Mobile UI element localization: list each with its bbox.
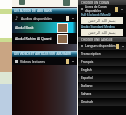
staticText: Deutsch (81, 100, 94, 104)
staticText: Français (81, 60, 94, 64)
button[interactable]: LES VIDEOS ET ARTICLES SUR ABU BAKR (12, 51, 77, 57)
staticText: Videos lectures (20, 59, 45, 64)
button[interactable]: LES AUDIOS DE ABU BAKR (12, 8, 77, 14)
staticText: Sahara (81, 92, 92, 96)
button[interactable]: Abdul Basit (12, 22, 77, 33)
button[interactable]: Sahara (78, 90, 126, 98)
button[interactable]: Español (78, 74, 126, 82)
button[interactable]: Livres de Coran (78, 5, 126, 13)
staticText: English (81, 68, 92, 72)
button[interactable]: Abdul Rahim Al Qasmi (12, 33, 77, 44)
staticText: ♪ (15, 15, 19, 21)
staticText: disponibles (85, 9, 102, 13)
staticText: CHOISIR UNE LANGUE (81, 38, 113, 42)
button[interactable]: Transcription (78, 50, 126, 58)
staticText: CHOISIR UN CORAN (81, 1, 110, 5)
staticText: LES AUDIOS DE ABU BAKR (14, 9, 52, 13)
button[interactable]: بسم الله الرحمن (81, 17, 123, 24)
button[interactable]: بسم الله الرحمن (81, 29, 123, 36)
staticText: Audios disponibles (21, 16, 52, 21)
button[interactable]: Langues disponibles (78, 42, 126, 50)
staticText: LES VIDEOS ET ARTICLES SUR ABU BAKR (14, 52, 71, 56)
staticText: Abdul Basit (15, 25, 34, 30)
staticText: Full 6 la book (Mardi) (81, 13, 111, 17)
staticText: بسم الله الرحمن (88, 18, 116, 23)
button[interactable]: Français (78, 58, 126, 66)
staticText: Abdul Rahim Al Qasmi (15, 36, 52, 41)
button[interactable]: English (78, 66, 126, 74)
button[interactable]: Videos lectures (12, 57, 77, 65)
staticText: بسم الله الرحمن (88, 30, 116, 35)
button[interactable]: Italiano (78, 82, 126, 90)
staticText: Transcription (81, 52, 101, 56)
staticText: Español (81, 76, 93, 80)
staticText: Livres de Coran (85, 5, 107, 9)
staticText: Arabic Standard Medina (81, 25, 115, 29)
staticText: Langues disponibles (85, 44, 116, 48)
button[interactable]: ♪ (12, 14, 77, 22)
button[interactable]: Deutsch (78, 98, 126, 106)
staticText: Italiano (81, 84, 93, 88)
